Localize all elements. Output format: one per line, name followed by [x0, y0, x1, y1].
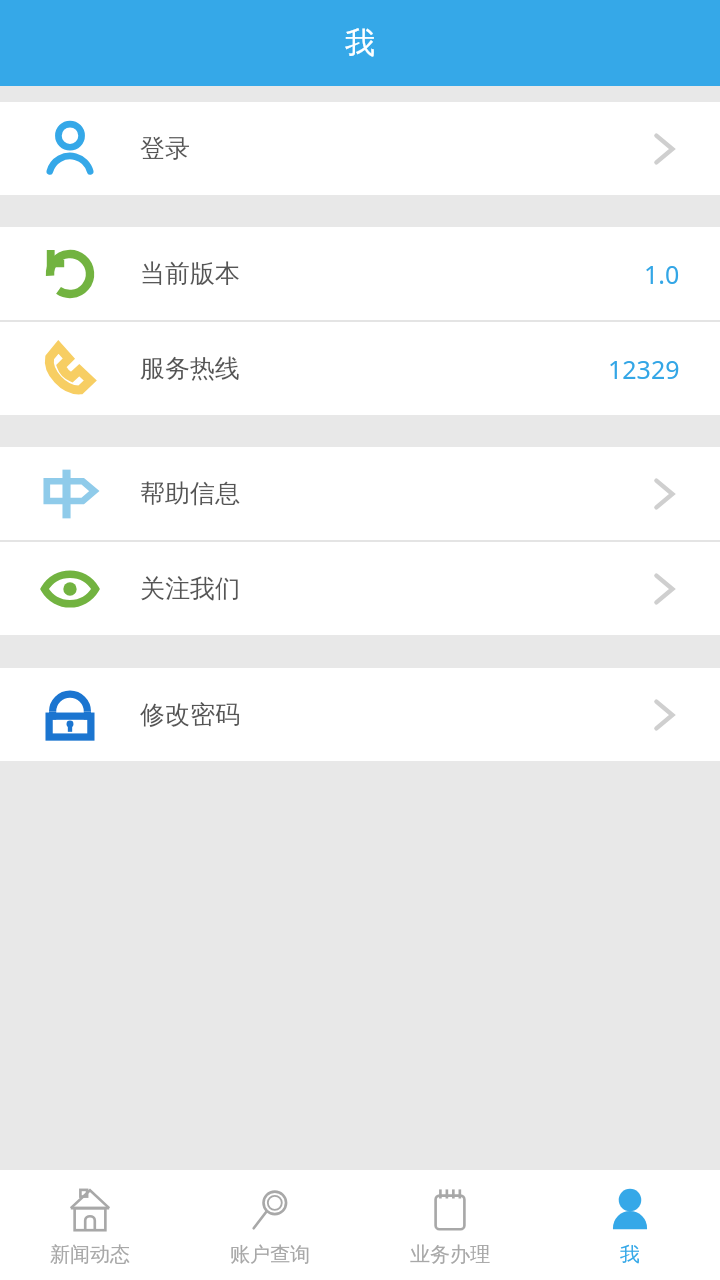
- button[interactable]: Account query: [180, 1170, 360, 1280]
- staticText: 登录: [140, 133, 190, 164]
- button[interactable]: Services: [360, 1170, 540, 1280]
- button[interactable]: News: [0, 1170, 180, 1280]
- staticText: 修改密码: [140, 699, 240, 730]
- button[interactable]: Hotline: [0, 322, 720, 415]
- other: Follow us: [41, 560, 99, 618]
- other: Account query: [246, 1187, 294, 1235]
- other: Change password: [41, 686, 99, 744]
- staticText: 12329: [608, 352, 680, 386]
- staticText: 1.0: [644, 257, 680, 291]
- staticText: 关注我们: [140, 573, 240, 604]
- other: Version: [41, 245, 99, 303]
- button[interactable]: Help: [0, 447, 720, 540]
- button[interactable]: Change password: [0, 668, 720, 761]
- other: Services: [426, 1187, 474, 1235]
- button[interactable]: Version: [0, 227, 720, 320]
- staticText: 服务热线: [140, 353, 240, 384]
- staticText: 业务办理: [410, 1242, 490, 1267]
- other: Me: [606, 1187, 654, 1235]
- other: Account: [41, 120, 99, 178]
- button[interactable]: Follow us: [0, 542, 720, 635]
- other: News: [66, 1187, 114, 1235]
- staticText: 我: [620, 1242, 640, 1267]
- staticText: 帮助信息: [140, 478, 240, 509]
- other: Hotline: [41, 340, 99, 398]
- staticText: 当前版本: [140, 258, 240, 289]
- staticText: 我: [345, 24, 375, 62]
- staticText: 账户查询: [230, 1242, 310, 1267]
- button[interactable]: Account: [0, 102, 720, 195]
- staticText: 新闻动态: [50, 1242, 130, 1267]
- other: Help: [41, 465, 99, 523]
- button[interactable]: Me: [540, 1170, 720, 1280]
